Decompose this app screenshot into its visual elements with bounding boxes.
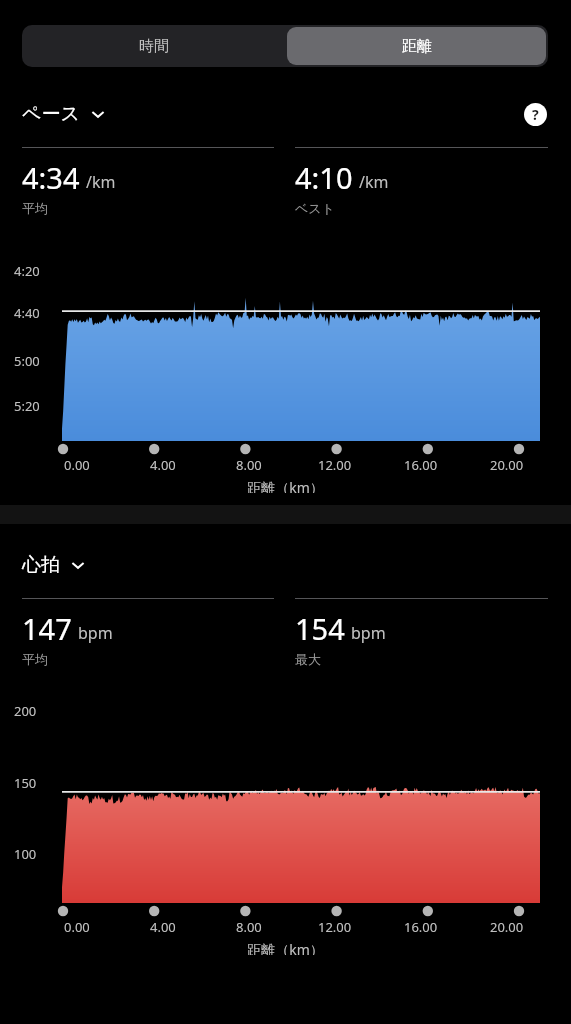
staticText: 0.00 [64, 456, 90, 474]
staticText: ? [532, 105, 539, 124]
staticText: /km [86, 171, 116, 193]
staticText: 16.00 [404, 918, 438, 936]
button[interactable]: 時間 [22, 25, 285, 67]
staticText: 20.00 [490, 456, 524, 474]
staticText: 20.00 [490, 918, 524, 936]
staticText: 0.00 [64, 918, 90, 936]
staticText: 平均 [22, 651, 48, 667]
staticText: 4:10 [295, 158, 353, 197]
staticText: 5:20 [14, 397, 40, 415]
button[interactable]: 心拍 [22, 553, 86, 577]
staticText: 4.00 [150, 918, 176, 936]
staticText: 平均 [22, 200, 48, 216]
staticText: 5:00 [14, 352, 40, 370]
staticText: 12.00 [318, 918, 352, 936]
button[interactable]: ヘルプ [522, 101, 548, 127]
staticText: 4.00 [150, 456, 176, 474]
staticText: 12.00 [318, 456, 352, 474]
staticText: 200 [14, 702, 37, 720]
staticText: 4:40 [14, 304, 40, 322]
staticText: 154 [295, 609, 345, 648]
staticText: 距離（km） [247, 940, 324, 955]
staticText: 147 [22, 609, 72, 648]
staticText: 4:20 [14, 262, 40, 280]
staticText: 心拍 [22, 553, 60, 577]
staticText: 距離（km） [247, 478, 324, 493]
staticText: 最大 [295, 651, 321, 667]
staticText: bpm [78, 622, 113, 644]
staticText: 100 [14, 845, 37, 863]
staticText: /km [359, 171, 389, 193]
staticText: 8.00 [236, 918, 262, 936]
staticText: ペース [22, 102, 80, 126]
staticText: ベスト [295, 200, 335, 216]
staticText: 時間 [139, 37, 169, 56]
button[interactable]: ペース [22, 102, 106, 126]
staticText: 4:34 [22, 158, 80, 197]
staticText: 8.00 [236, 456, 262, 474]
button[interactable]: 距離 [287, 27, 546, 65]
staticText: 16.00 [404, 456, 438, 474]
staticText: 150 [14, 774, 37, 792]
staticText: bpm [351, 622, 386, 644]
staticText: 距離 [402, 37, 432, 56]
